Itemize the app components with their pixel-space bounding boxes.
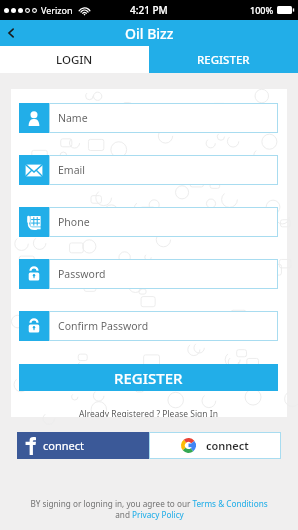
button[interactable]: Password xyxy=(19,259,278,289)
staticText: Name xyxy=(58,111,88,125)
staticText: Email xyxy=(58,163,85,177)
button[interactable]: connect xyxy=(17,432,149,459)
button[interactable]: Back xyxy=(0,22,22,44)
button[interactable]: REGISTER xyxy=(149,46,298,73)
button[interactable]: LOGIN xyxy=(0,46,149,73)
staticText: 100% xyxy=(250,4,274,16)
staticText: connect xyxy=(43,438,84,453)
button[interactable]: Confirm Password xyxy=(19,311,278,341)
button[interactable]: Phone xyxy=(19,207,278,237)
staticText: Confirm Password xyxy=(58,319,149,333)
staticText: 4:21 PM xyxy=(130,3,168,17)
staticText: REGISTER xyxy=(114,368,183,388)
staticText: Phone xyxy=(58,215,90,229)
staticText: and Privacy Policy xyxy=(115,509,184,520)
staticText: Password xyxy=(58,267,106,281)
staticText: Oil Bizz xyxy=(125,24,174,43)
staticText: connect xyxy=(206,438,249,453)
staticText: REGISTER xyxy=(197,52,250,68)
button[interactable]: connect xyxy=(149,432,281,459)
button[interactable]: Name xyxy=(19,103,278,133)
button[interactable]: Already Registered ? Please Sign In xyxy=(19,408,278,417)
staticText: LOGIN xyxy=(56,52,93,68)
button[interactable]: Email xyxy=(19,155,278,185)
staticText: BY signing or logning in, you agree to o… xyxy=(30,498,268,509)
staticText: Verizon xyxy=(41,4,73,16)
button[interactable]: REGISTER xyxy=(19,364,278,391)
button[interactable]: BY signing or logning in, you agree to o… xyxy=(8,498,290,520)
